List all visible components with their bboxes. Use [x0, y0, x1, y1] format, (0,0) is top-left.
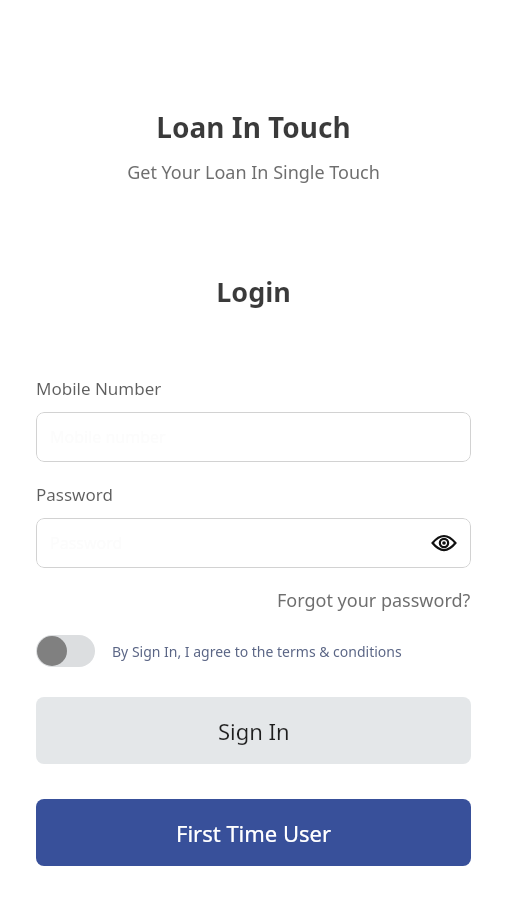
button[interactable]: Sign In [36, 697, 471, 764]
staticText: Sign In [218, 716, 290, 746]
staticText: First Time User [176, 818, 332, 848]
button[interactable]: Password [36, 518, 471, 568]
staticText: Loan In Touch [0, 108, 507, 146]
button[interactable]: First Time User [36, 799, 471, 866]
button[interactable]: Forgot your password? [277, 588, 471, 613]
staticText: Login [0, 273, 507, 310]
button[interactable]: Show password [427, 526, 461, 560]
staticText: Mobile Number [36, 377, 162, 400]
button[interactable]: By Sign In, I agree to the terms & condi… [36, 635, 471, 667]
staticText: By Sign In, I agree to the terms & condi… [112, 642, 402, 661]
staticText: Get Your Loan In Single Touch [0, 160, 507, 185]
button[interactable]: Mobile number [36, 412, 471, 462]
staticText: Password [36, 483, 113, 506]
